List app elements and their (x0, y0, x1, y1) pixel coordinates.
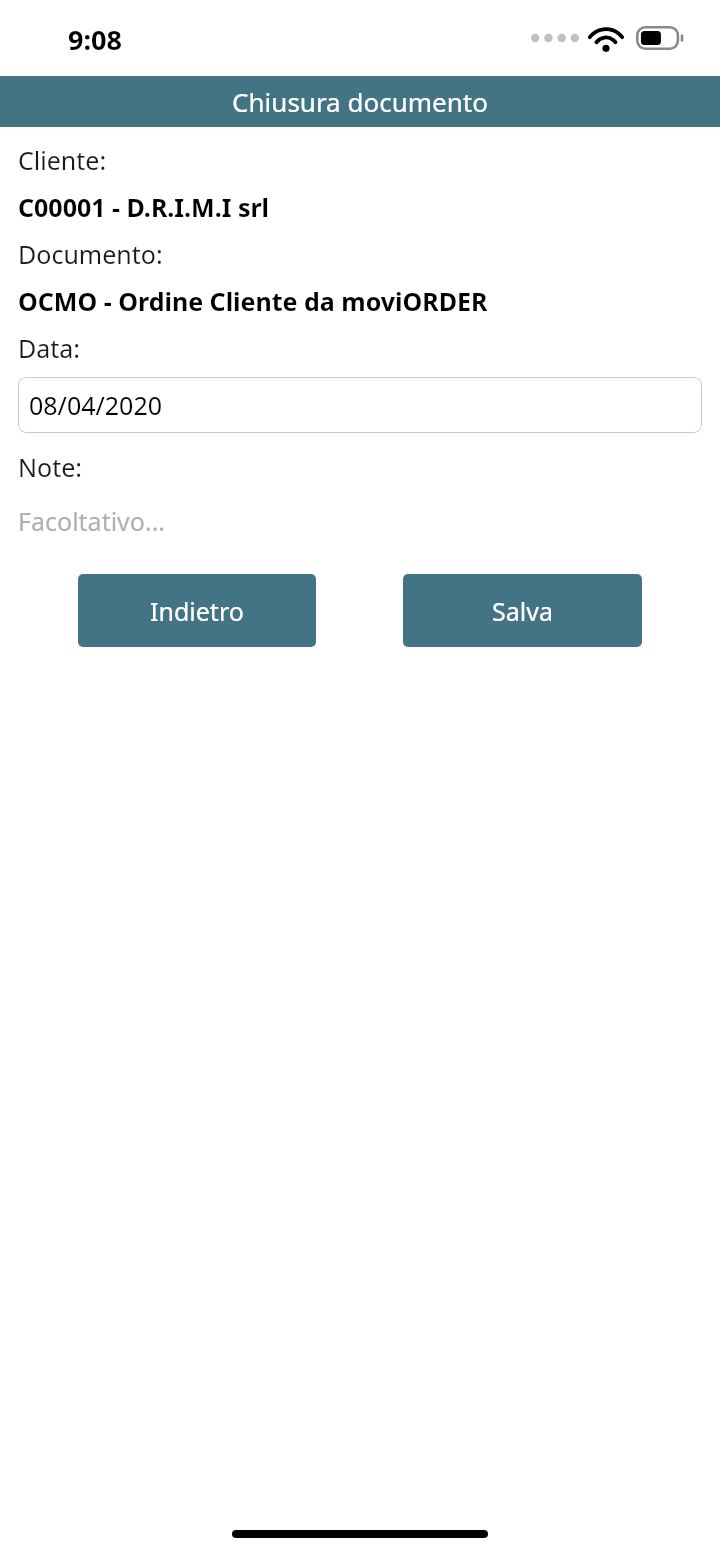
staticText: Indietro (150, 594, 244, 628)
staticText: Documento: (18, 237, 163, 271)
staticText: Note: (18, 450, 82, 484)
staticText: Cliente: (18, 143, 107, 177)
button[interactable]: 08/04/2020 (18, 377, 702, 433)
staticText: C00001 - D.R.I.M.I srl (18, 190, 270, 224)
other: Home indicator (232, 1530, 488, 1538)
staticText: OCMO - Ordine Cliente da moviORDER (18, 284, 488, 318)
staticText: 9:08 (68, 21, 122, 58)
staticText: Salva (492, 594, 553, 628)
staticText: Facoltativo... (18, 504, 166, 538)
button[interactable]: Salva (403, 574, 642, 647)
staticText: Chiusura documento (232, 84, 488, 119)
staticText: Data: (18, 331, 81, 365)
staticText: 08/04/2020 (29, 388, 163, 422)
button[interactable]: Indietro (78, 574, 316, 647)
button[interactable]: Facoltativo... (18, 504, 702, 550)
